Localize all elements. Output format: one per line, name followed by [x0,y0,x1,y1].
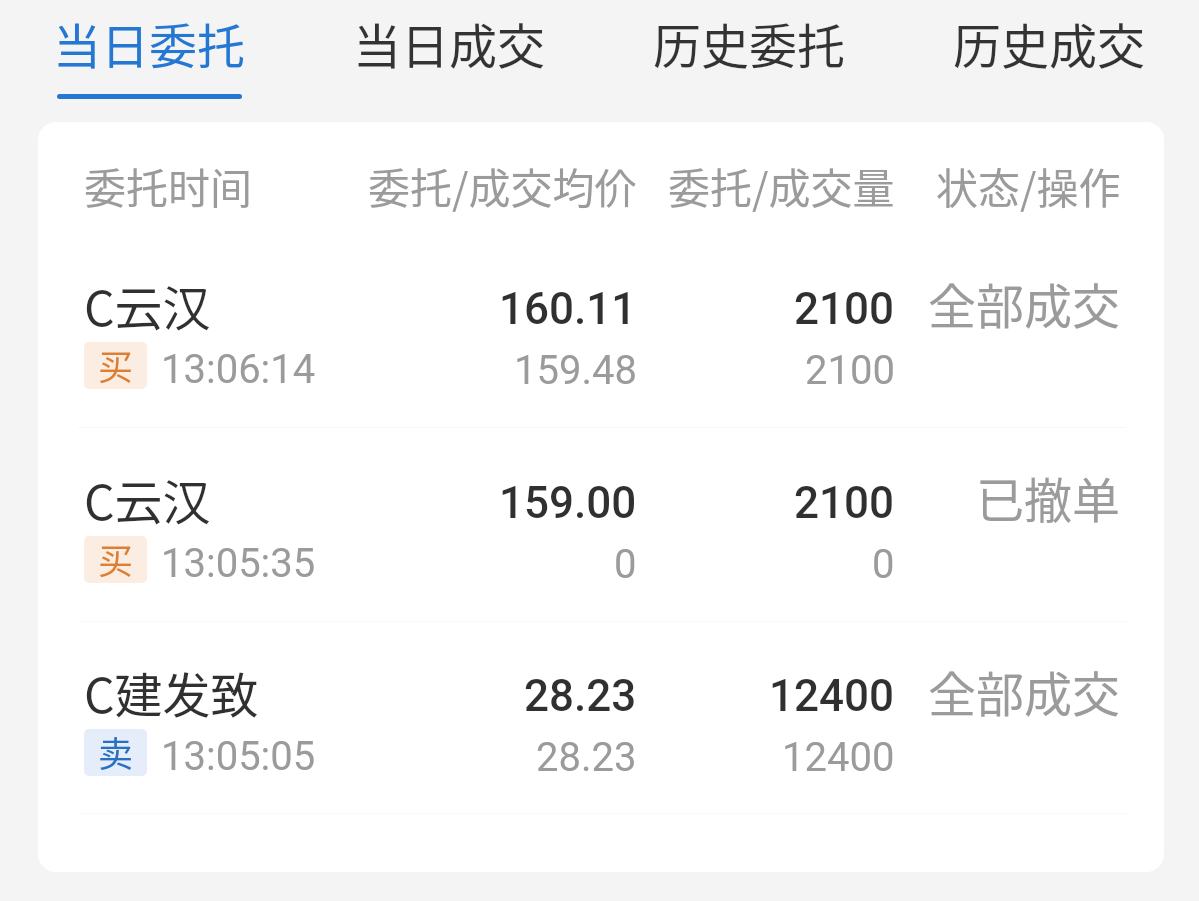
staticText: C云汉 [84,270,211,340]
other: 委托查询 [0,0,1199,901]
staticText: 委托时间 [84,155,367,216]
staticText: 当日成交 [353,8,546,78]
button[interactable]: C建发致 [38,622,1164,813]
staticText: 当日委托 [53,8,246,78]
staticText: 卖 [98,729,134,773]
staticText: 13:05:05 [161,733,316,780]
button[interactable]: 历史委托 [599,0,899,122]
staticText: 13:06:14 [161,346,316,393]
staticText: 状态/操作 [936,155,1121,216]
staticText: 13:05:35 [161,540,316,587]
staticText: C云汉 [84,464,211,534]
staticText: C建发致 [84,657,259,727]
staticText: 历史委托 [653,8,846,78]
staticText: 159.00 [499,477,637,529]
staticText: 159.48 [514,347,637,394]
staticText: 12400 [782,734,895,781]
staticText: 委托/成交量 [668,155,895,216]
staticText: 2100 [794,477,895,529]
staticText: 2100 [794,283,895,335]
staticText: 0 [614,541,637,588]
button[interactable]: C云汉 [38,428,1164,621]
button[interactable]: 当日委托 [0,0,299,122]
staticText: 委托/成交均价 [368,155,637,216]
button[interactable]: C云汉 [38,234,1164,427]
staticText: 0 [872,541,895,588]
staticText: 买 [98,536,134,580]
staticText: 2100 [805,347,895,394]
staticText: 28.23 [524,670,637,722]
staticText: 买 [98,342,134,386]
staticText: 28.23 [536,734,637,781]
staticText: 12400 [769,670,895,722]
staticText: 160.11 [499,283,637,335]
button[interactable]: 当日成交 [299,0,599,122]
staticText: 全部成交 [928,268,1121,338]
staticText: 全部成交 [928,656,1121,726]
button[interactable]: 历史成交 [899,0,1199,122]
staticText: 历史成交 [953,8,1146,78]
staticText: 已撤单 [976,462,1121,532]
